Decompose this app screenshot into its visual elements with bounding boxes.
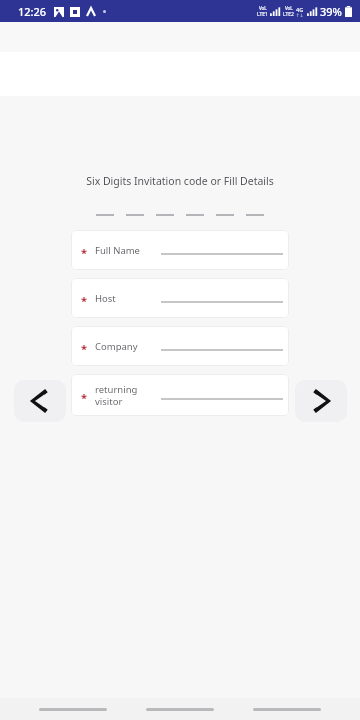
- staticText: Company: [95, 340, 138, 353]
- staticText: *: [81, 293, 87, 303]
- staticText: LTE2: [283, 11, 294, 18]
- staticText: ↑↓: [296, 13, 304, 18]
- staticText: LTE1: [257, 11, 268, 18]
- button[interactable]: *: [71, 230, 289, 270]
- button[interactable]: *: [71, 278, 289, 318]
- staticText: Full Name: [95, 244, 140, 257]
- staticText: Host: [95, 292, 116, 305]
- button[interactable]: *: [71, 326, 289, 366]
- staticText: *: [81, 245, 87, 255]
- button[interactable]: Navigation: [146, 708, 214, 711]
- button[interactable]: Navigation: [39, 708, 107, 711]
- staticText: VoL: [285, 5, 293, 11]
- staticText: VoL: [259, 5, 267, 11]
- staticText: *: [81, 341, 87, 351]
- staticText: returning visitor: [95, 383, 138, 407]
- staticText: 12:26: [18, 4, 47, 19]
- staticText: Six Digits Invitation code or Fill Detai…: [0, 174, 360, 188]
- staticText: 4G: [296, 6, 304, 13]
- button[interactable]: Navigation: [253, 708, 321, 711]
- staticText: *: [81, 390, 87, 400]
- staticText: 39%: [320, 4, 342, 19]
- button[interactable]: *: [71, 374, 289, 416]
- button[interactable]: Next: [295, 380, 347, 422]
- button[interactable]: Previous: [14, 380, 66, 422]
